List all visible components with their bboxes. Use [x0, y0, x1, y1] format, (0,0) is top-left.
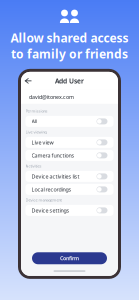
- button[interactable]: Confirm: [32, 252, 107, 264]
- staticText: Live view: [31, 139, 53, 146]
- staticText: Activities: [25, 163, 41, 168]
- button[interactable]: Local recordings: [25, 184, 113, 195]
- button[interactable]: All: [25, 116, 113, 127]
- button[interactable]: Back: [21, 74, 35, 87]
- staticText: Add User: [55, 76, 84, 85]
- button[interactable]: Live view: [25, 137, 113, 148]
- staticText: Local recordings: [31, 186, 71, 193]
- staticText: Camera functions: [31, 152, 74, 159]
- staticText: david@itonex.com: [29, 93, 74, 100]
- button[interactable]: Device settings: [25, 205, 113, 216]
- staticText: Allow shared access: [10, 30, 128, 46]
- staticText: Live viewing: [25, 129, 46, 134]
- staticText: Device management: [25, 197, 61, 202]
- staticText: Device activities list: [31, 173, 79, 180]
- staticText: Confirm: [60, 255, 79, 262]
- button[interactable]: Camera functions: [25, 150, 113, 161]
- staticText: to family or friends: [11, 46, 128, 62]
- button[interactable]: Device activities list: [25, 171, 113, 182]
- staticText: All: [31, 118, 36, 125]
- staticText: Device settings: [31, 207, 69, 214]
- staticText: Permissions: [25, 108, 47, 113]
